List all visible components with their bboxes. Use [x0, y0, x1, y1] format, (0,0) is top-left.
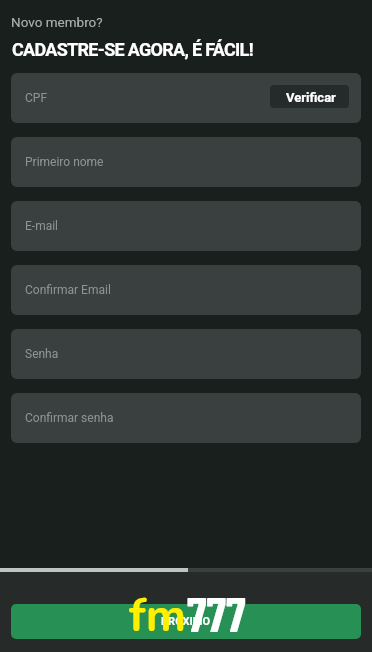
- button[interactable]: CPF: [11, 73, 361, 123]
- button[interactable]: Confirmar senha: [11, 393, 361, 443]
- button[interactable]: Verificar: [270, 85, 349, 108]
- staticText: 777: [187, 584, 246, 642]
- button[interactable]: Confirmar Email: [11, 265, 361, 315]
- button[interactable]: Senha: [11, 329, 361, 379]
- staticText: Confirmar senha: [25, 411, 114, 425]
- staticText: CPF: [25, 91, 48, 105]
- staticText: CADASTRE-SE AGORA, É FÁCIL!: [12, 39, 253, 60]
- staticText: Confirmar Email: [25, 283, 111, 297]
- staticText: PRÓXIMO: [161, 615, 211, 628]
- button[interactable]: Primeiro nome: [11, 137, 361, 187]
- staticText: Senha: [25, 347, 59, 361]
- button[interactable]: E-mail: [11, 201, 361, 251]
- button[interactable]: PRÓXIMO: [11, 604, 361, 639]
- staticText: Verificar: [286, 90, 336, 105]
- staticText: Novo membro?: [11, 14, 103, 30]
- staticText: fm: [129, 584, 187, 647]
- staticText: E-mail: [25, 219, 59, 233]
- staticText: Primeiro nome: [25, 155, 104, 169]
